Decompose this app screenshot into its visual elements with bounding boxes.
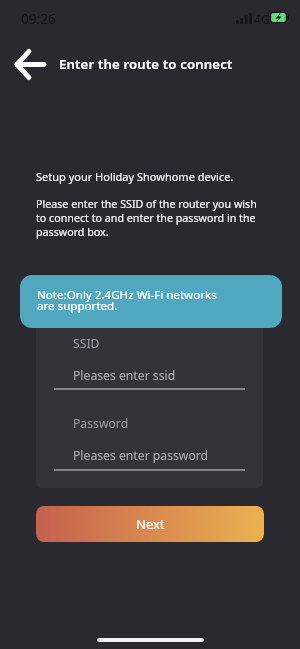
button[interactable]: Pleases enter ssid	[54, 359, 245, 390]
staticText: Password	[73, 415, 129, 432]
staticText: 09:26	[21, 9, 56, 28]
staticText: Pleases enter password	[73, 447, 209, 464]
staticText: Pleases enter ssid	[73, 367, 176, 384]
staticText: are supported.	[37, 298, 118, 314]
button[interactable]: Next	[36, 506, 264, 542]
staticText: Note:Only 2.4GHz Wi-Fi networks	[37, 287, 217, 303]
staticText: Setup your Holiday Showhome device.	[36, 169, 234, 184]
staticText: 4G	[254, 11, 270, 28]
staticText: Next	[136, 515, 165, 533]
staticText: Please enter the SSID of the router you …	[36, 197, 264, 239]
staticText: SSID	[73, 335, 100, 352]
button[interactable]: Back	[8, 42, 52, 86]
button[interactable]: Pleases enter password	[54, 440, 245, 471]
staticText: Enter the route to connect	[59, 55, 233, 73]
